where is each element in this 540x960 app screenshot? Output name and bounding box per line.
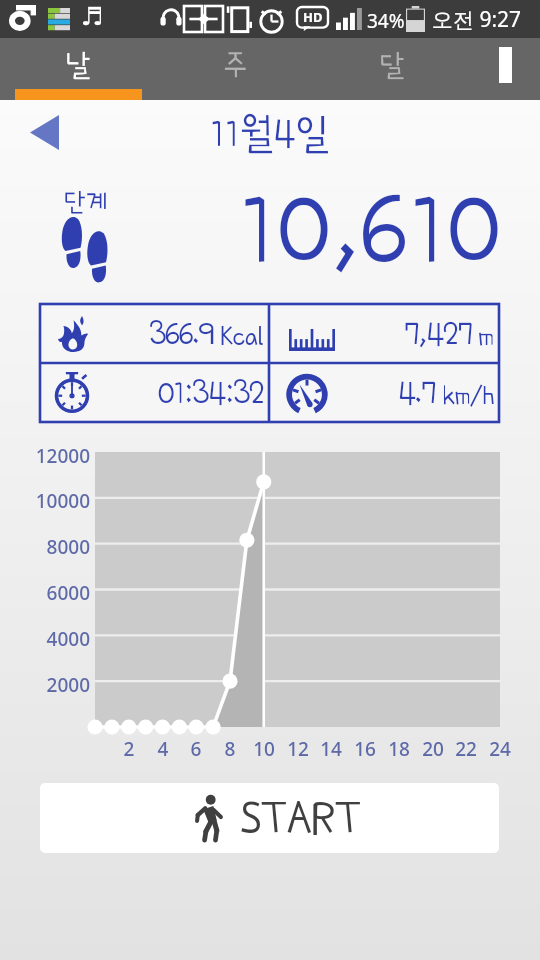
- staticText: 2: [111, 736, 147, 762]
- staticText: HD: [303, 8, 323, 26]
- staticText: 14: [313, 736, 349, 762]
- staticText: Kcal: [220, 322, 264, 351]
- staticText: ♬: [81, 2, 104, 31]
- staticText: 10,610: [238, 176, 501, 283]
- staticText: 34%: [367, 8, 405, 34]
- staticText: m: [478, 322, 494, 351]
- staticText: 22: [448, 736, 484, 762]
- staticText: 4000: [0, 626, 90, 652]
- staticText: 16: [347, 736, 383, 762]
- staticText: 2000: [0, 672, 90, 698]
- staticText: 4: [145, 736, 181, 762]
- staticText: 7,427: [404, 317, 472, 351]
- staticText: 4.7: [398, 376, 436, 410]
- staticText: 8: [212, 736, 248, 762]
- button[interactable]: More options: [471, 38, 540, 100]
- staticText: 주: [223, 50, 248, 80]
- staticText: km/h: [442, 381, 494, 410]
- button[interactable]: 날: [0, 38, 157, 100]
- button[interactable]: 달: [314, 38, 471, 100]
- staticText: 6: [178, 736, 214, 762]
- staticText: START: [240, 793, 361, 842]
- staticText: 11월4일: [210, 112, 330, 154]
- button[interactable]: 주: [157, 38, 314, 100]
- staticText: 10: [246, 736, 282, 762]
- button[interactable]: START: [40, 783, 499, 853]
- staticText: 12000: [0, 443, 90, 469]
- staticText: 18: [381, 736, 417, 762]
- staticText: 단계: [64, 188, 108, 215]
- staticText: 6000: [0, 580, 90, 606]
- button[interactable]: Previous day: [14, 102, 74, 162]
- staticText: 01:34:32: [158, 376, 264, 410]
- staticText: 24: [482, 736, 518, 762]
- staticText: 12: [280, 736, 316, 762]
- staticText: 10000: [0, 488, 90, 514]
- staticText: 날: [66, 50, 91, 80]
- staticText: 8000: [0, 534, 90, 560]
- staticText: 달: [380, 50, 405, 80]
- staticText: 오전 9:27: [432, 5, 522, 34]
- staticText: 366.9: [149, 317, 214, 351]
- staticText: 20: [415, 736, 451, 762]
